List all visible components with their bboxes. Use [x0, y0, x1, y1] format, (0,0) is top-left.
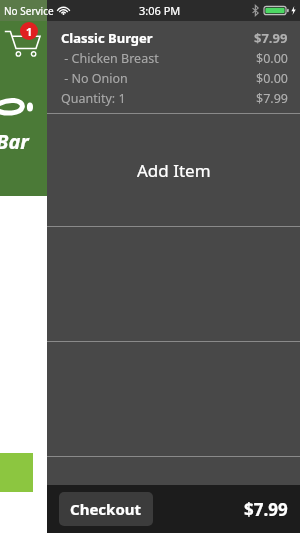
staticText: $7.99	[244, 498, 288, 521]
staticText: $0.00	[256, 50, 288, 67]
staticText: No Service	[4, 4, 54, 18]
button[interactable]: Cart	[4, 26, 44, 60]
button[interactable]: Checkout	[59, 492, 153, 526]
staticText: 1	[26, 24, 33, 39]
staticText: Classic Burger	[61, 29, 153, 47]
staticText: Quantity: 1	[61, 90, 126, 107]
staticText: Checkout	[70, 499, 142, 519]
staticText: - Chicken Breast	[61, 50, 159, 67]
button[interactable]: Classic Burger	[47, 21, 300, 113]
staticText: $0.00	[256, 70, 288, 87]
button[interactable]: Add Item	[47, 114, 300, 226]
staticText: Add Item	[137, 159, 211, 182]
staticText: Bar	[0, 128, 29, 155]
staticText: $7.99	[256, 90, 288, 107]
staticText: - No Onion	[61, 70, 128, 87]
staticText: $7.99	[254, 29, 288, 47]
staticText: 3:06 PM	[139, 3, 181, 18]
